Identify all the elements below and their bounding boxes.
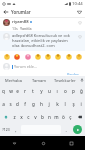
button[interactable]: v — [32, 111, 39, 122]
button[interactable]: o — [61, 85, 69, 96]
staticText: i — [80, 101, 82, 107]
staticText: w — [9, 88, 13, 94]
button[interactable]: t — [29, 85, 37, 96]
staticText: b — [41, 114, 44, 120]
button[interactable]: w — [7, 85, 14, 96]
staticText: ş — [72, 101, 75, 107]
button[interactable]: ğ — [77, 85, 85, 96]
button[interactable]: n — [46, 111, 53, 122]
button[interactable]: Ana ekran — [29, 136, 57, 150]
button[interactable]: k — [53, 98, 61, 109]
button[interactable]: Tesekkurler — [52, 76, 78, 84]
button[interactable]: j — [45, 98, 53, 109]
button[interactable]: Son uygulamalar — [57, 136, 85, 150]
staticText: v — [34, 114, 37, 120]
button[interactable]: Tamam — [26, 76, 52, 84]
button[interactable]: f — [21, 98, 29, 109]
button[interactable]: y — [37, 85, 45, 96]
button[interactable]: Dua — [75, 53, 82, 60]
button[interactable]: r — [21, 85, 29, 96]
button[interactable]: l — [61, 98, 69, 109]
button[interactable]: ö — [60, 111, 67, 122]
staticText: Yorum ekle... — [14, 64, 38, 69]
button[interactable]: Gonder — [70, 123, 85, 136]
staticText: c — [27, 114, 30, 120]
staticText: r — [24, 88, 26, 94]
button[interactable]: Alkis — [3, 53, 10, 60]
staticText: d — [16, 101, 19, 107]
staticText: Merhaba — [5, 78, 22, 83]
staticText: n — [48, 114, 51, 120]
button[interactable]: u — [45, 85, 53, 96]
staticText: m — [54, 114, 59, 120]
button[interactable]: . — [62, 124, 70, 135]
button[interactable]: Gulen — [34, 53, 41, 60]
button[interactable]: , — [12, 124, 20, 135]
staticText: q — [2, 88, 5, 94]
button[interactable]: Atesli — [13, 53, 20, 60]
button[interactable]: Geri — [0, 136, 29, 150]
button[interactable]: Gozyasi — [65, 53, 72, 60]
button[interactable]: Mikrofon — [78, 76, 85, 84]
button[interactable]: b — [39, 111, 46, 122]
button[interactable]: ç — [67, 111, 74, 122]
button[interactable]: Saskin — [54, 53, 61, 60]
staticText: ?123 — [2, 127, 10, 132]
button[interactable]: ş — [69, 98, 77, 109]
button[interactable]: Shift — [1, 111, 10, 122]
button[interactable]: q — [0, 85, 7, 96]
button[interactable]: i — [77, 98, 85, 109]
button[interactable]: Begen — [76, 19, 83, 26]
staticText: ö — [62, 114, 65, 120]
button[interactable]: x — [18, 111, 25, 122]
button[interactable]: g — [29, 98, 37, 109]
button[interactable]: e — [14, 85, 21, 96]
staticText: y — [40, 88, 43, 94]
button[interactable]: Sirala — [74, 7, 85, 17]
staticText: ğ — [80, 88, 83, 94]
button[interactable]: ?123 — [0, 124, 12, 135]
button[interactable]: p — [69, 85, 77, 96]
staticText: p — [72, 88, 75, 94]
staticText: k — [56, 101, 59, 107]
staticText: h — [40, 101, 43, 107]
staticText: 10:44 — [72, 1, 83, 7]
button[interactable]: s — [7, 98, 14, 109]
staticText: Yorumlar — [11, 9, 31, 15]
button[interactable]: Yorum ekle... — [12, 63, 82, 70]
button[interactable]: Geri — [0, 7, 11, 17]
button[interactable]: Begen — [76, 33, 83, 40]
button[interactable]: m — [53, 111, 60, 122]
staticText: , — [15, 127, 17, 133]
staticText: j — [48, 101, 50, 107]
staticText: f — [24, 101, 26, 107]
button[interactable]: c — [25, 111, 32, 122]
staticText: u — [48, 88, 51, 94]
staticText: riyam88 — [12, 19, 29, 25]
staticText: Tamam — [32, 78, 46, 83]
staticText: 13s — [12, 26, 18, 31]
staticText: e — [16, 88, 19, 94]
button[interactable]: a — [0, 98, 7, 109]
staticText: x — [20, 114, 23, 120]
button[interactable]: Kalp — [24, 53, 31, 60]
staticText: s — [9, 101, 12, 107]
button[interactable]: d — [14, 98, 21, 109]
button[interactable]: Sil — [75, 111, 84, 122]
staticText: ç — [69, 114, 72, 120]
staticText: ı — [56, 88, 58, 94]
button[interactable]: z — [11, 111, 18, 122]
staticText: Tesekkurler — [54, 78, 76, 83]
staticText: o — [64, 88, 67, 94]
button[interactable]: Paylas — [66, 71, 80, 76]
staticText: . — [65, 127, 67, 133]
staticText: z — [13, 114, 16, 120]
staticText: g — [32, 101, 35, 107]
button[interactable]: ı — [53, 85, 61, 96]
staticText: a — [2, 101, 5, 107]
staticText: l — [64, 101, 66, 107]
button[interactable]: Uzgun — [44, 53, 51, 60]
button[interactable]: h — [37, 98, 45, 109]
button[interactable]: Merhaba — [0, 76, 26, 84]
